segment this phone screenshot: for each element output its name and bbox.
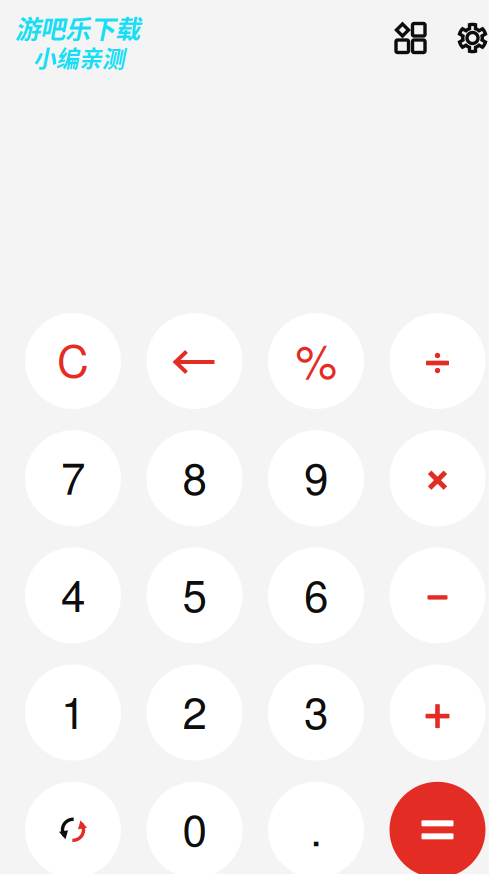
staticText: 5	[182, 561, 206, 624]
button[interactable]: 7	[25, 430, 121, 526]
button[interactable]: 9	[268, 430, 364, 526]
button[interactable]: Settings	[448, 14, 489, 61]
button[interactable]: 4	[25, 547, 121, 643]
button[interactable]: 5	[146, 547, 242, 643]
button[interactable]: 6	[268, 547, 364, 643]
button[interactable]: %	[268, 313, 364, 409]
button[interactable]: Apps	[385, 14, 436, 62]
staticText: 7	[61, 444, 85, 507]
button[interactable]	[389, 430, 485, 526]
button[interactable]: Equals	[389, 782, 485, 874]
button[interactable]	[389, 313, 485, 409]
button[interactable]: 8	[146, 430, 242, 526]
button[interactable]: History	[25, 782, 121, 874]
staticText: 8	[182, 444, 206, 507]
button[interactable]: 0	[146, 782, 242, 874]
staticText: 9	[304, 444, 328, 507]
staticText: 0	[182, 796, 206, 859]
button[interactable]: 3	[268, 665, 364, 761]
button[interactable]: 2	[146, 665, 242, 761]
staticText: 1	[61, 679, 85, 742]
staticText: 6	[304, 561, 328, 624]
staticText: C	[57, 327, 89, 390]
staticText: %	[295, 325, 336, 392]
staticText: 2	[182, 679, 206, 742]
button[interactable]	[389, 547, 485, 643]
staticText: 4	[61, 561, 85, 624]
button[interactable]: .	[268, 782, 364, 874]
button[interactable]: 1	[25, 665, 121, 761]
staticText: 小编亲测	[33, 41, 125, 73]
staticText: 3	[304, 679, 328, 742]
staticText: .	[310, 796, 322, 859]
staticText: 游吧乐下载	[15, 9, 140, 46]
button[interactable]	[146, 313, 242, 409]
button[interactable]: C	[25, 313, 121, 409]
button[interactable]	[389, 665, 485, 761]
